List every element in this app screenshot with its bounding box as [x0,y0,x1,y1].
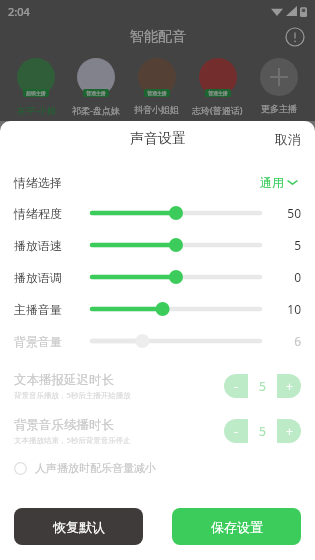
staticText: 祁柔-盘点妹 [72,104,120,116]
staticText: 文本播报延迟时长 [14,372,114,388]
staticText: 背景音乐播放，5秒后主播开始播放 [14,390,131,400]
button[interactable]: 播放语调 [14,261,301,293]
button[interactable]: 播放语速 [14,229,301,261]
button[interactable]: - [224,374,248,398]
staticText: 恢复默认 [53,519,105,535]
staticText: + [286,423,293,439]
button[interactable]: 背景音量 [14,325,301,357]
staticText: 智能配音 [130,28,186,46]
button[interactable]: - [224,419,248,443]
staticText: 文本播放结束，5秒后背景音乐停止 [14,435,131,445]
button[interactable]: - [224,374,301,398]
staticText: 播放语调 [14,270,76,285]
button[interactable]: 主播音量 [14,293,301,325]
staticText: 6 [294,333,301,349]
staticText: 通用 [260,175,284,190]
staticText: 主播音量 [14,302,76,317]
staticText: - [234,423,238,439]
button[interactable]: 情绪程度 [14,197,301,229]
button[interactable]: 人声播放时配乐音量减小 [14,453,301,483]
staticText: 背景音乐续播时长 [14,417,114,433]
staticText: 普通主播 [208,90,228,96]
staticText: 人声播放时配乐音量减小 [35,461,156,475]
button[interactable]: + [277,374,301,398]
button[interactable]: 取消 [261,125,315,153]
staticText: 声音设置 [130,130,186,148]
staticText: 保存设置 [211,519,263,535]
staticText: 播放语速 [14,238,76,253]
staticText: 取消 [275,131,301,147]
staticText: 志玲(普通话) [192,104,243,116]
button[interactable]: + [277,419,301,443]
button[interactable]: 普通主播 [66,58,126,116]
staticText: 0 [294,269,301,285]
button[interactable]: 超级主播 [6,58,66,116]
staticText: 情绪程度 [14,206,76,221]
button[interactable]: 保存设置 [172,508,301,545]
button[interactable]: - [224,419,301,443]
staticText: 5 [259,378,266,394]
staticText: 情绪选择 [14,175,62,190]
staticText: 抖音小姐姐 [134,104,179,115]
staticText: 普通主播 [147,90,167,96]
staticText: 在宇-小帅 [17,104,56,116]
button[interactable]: 通用 [256,171,301,194]
staticText: 10 [287,301,301,317]
staticText: 50 [287,205,301,221]
button[interactable]: 更多主播 [248,58,309,114]
staticText: 5 [294,237,301,253]
button[interactable]: 恢复默认 [14,508,143,545]
staticText: + [286,378,293,394]
button[interactable]: 帮助 [285,27,305,47]
staticText: 5 [259,423,266,439]
button[interactable]: 普通主播 [126,58,187,115]
staticText: - [234,378,238,394]
button[interactable]: 普通主播 [187,58,248,116]
staticText: 超级主播 [26,90,46,96]
staticText: 普通主播 [86,90,106,96]
staticText: 2:04 [8,4,30,19]
staticText: 更多主播 [261,103,297,114]
staticText: 背景音量 [14,334,76,349]
